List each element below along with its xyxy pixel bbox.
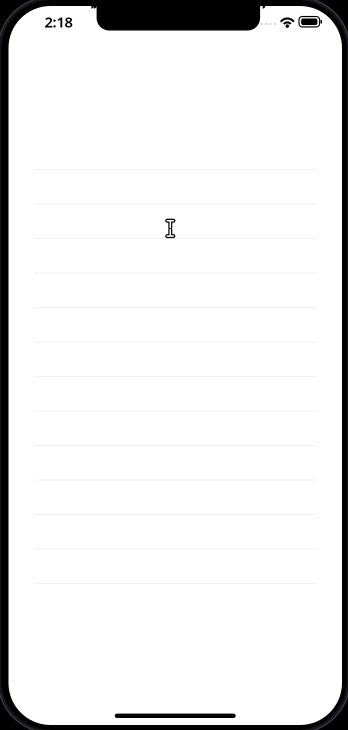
button[interactable]: List row (34, 204, 316, 239)
staticText: 2:18 (44, 12, 72, 31)
